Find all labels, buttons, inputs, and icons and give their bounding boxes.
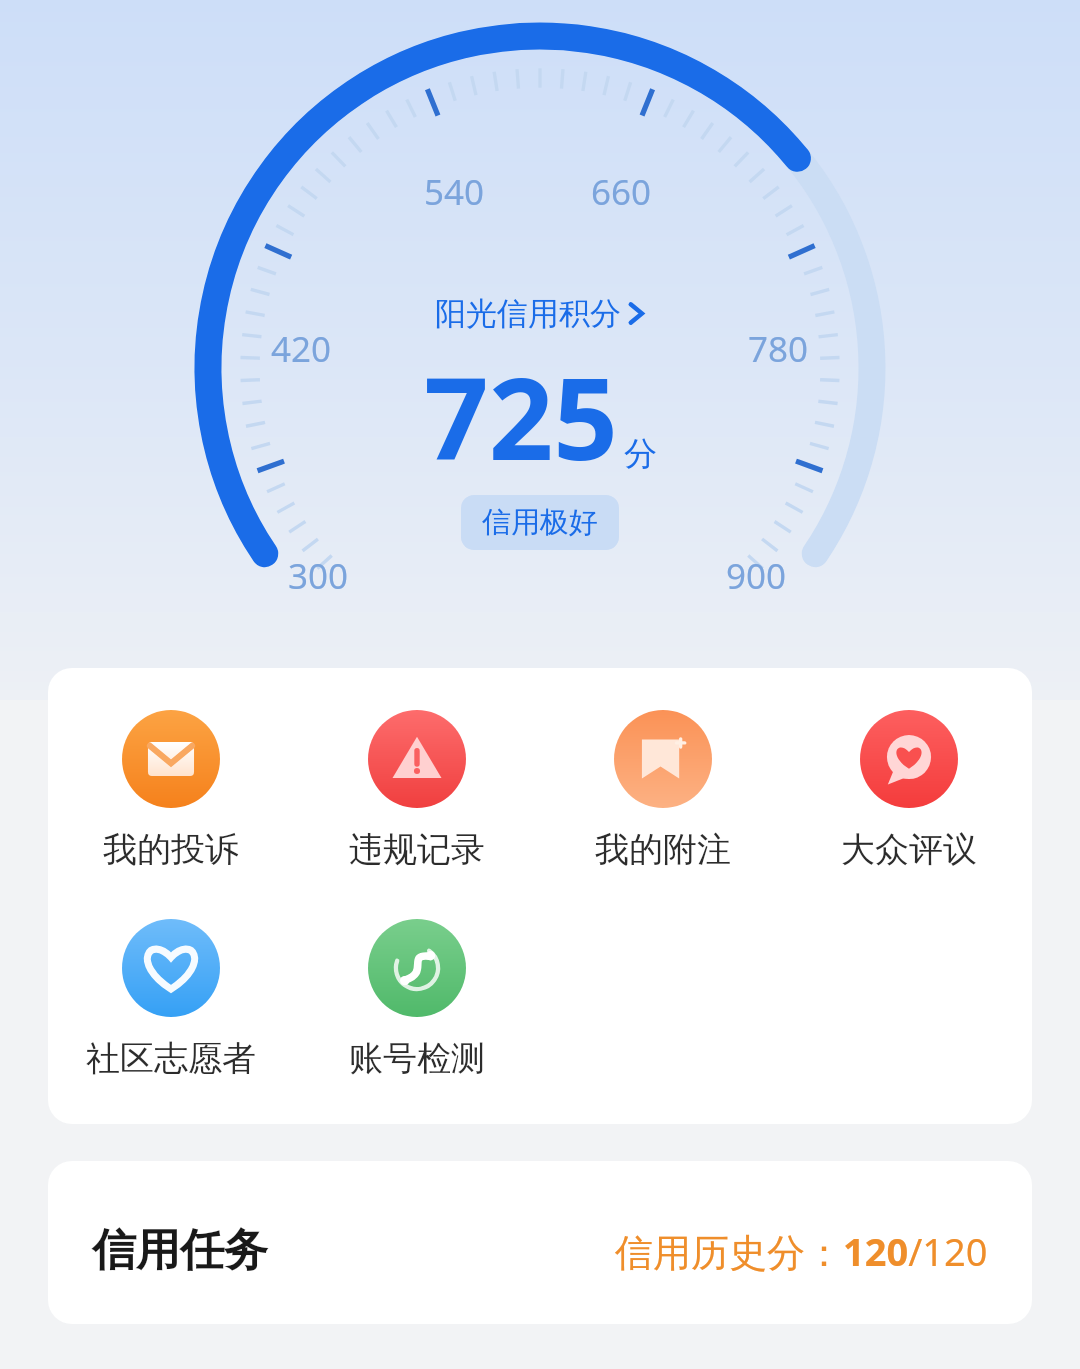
staticText: 420: [271, 325, 332, 373]
staticText: 540: [424, 168, 485, 216]
staticText: 社区志愿者: [86, 1037, 256, 1080]
button[interactable]: 我的投诉: [48, 710, 294, 871]
staticText: 我的投诉: [103, 828, 239, 871]
staticText: 725: [424, 339, 618, 493]
button[interactable]: 阳光信用积分: [431, 292, 649, 335]
staticText: 信用极好: [482, 504, 598, 541]
button[interactable]: 信用极好: [461, 495, 619, 550]
button[interactable]: 社区志愿者: [48, 919, 294, 1080]
staticText: 780: [748, 325, 809, 373]
staticText: 阳光信用积分: [435, 294, 621, 333]
staticText: 900: [726, 552, 787, 600]
staticText: 300: [288, 552, 349, 600]
button[interactable]: 账号检测: [294, 919, 540, 1080]
staticText: 信用历史分：120/120: [615, 1225, 988, 1277]
button[interactable]: 我的附注: [540, 710, 786, 871]
staticText: 660: [591, 168, 652, 216]
button[interactable]: 大众评议: [786, 710, 1032, 871]
staticText: 大众评议: [841, 828, 977, 871]
staticText: 违规记录: [349, 828, 485, 871]
staticText: 分: [624, 433, 657, 475]
staticText: 我的附注: [595, 828, 731, 871]
staticText: 信用任务: [92, 1223, 268, 1278]
staticText: 账号检测: [349, 1037, 485, 1080]
button[interactable]: 违规记录: [294, 710, 540, 871]
